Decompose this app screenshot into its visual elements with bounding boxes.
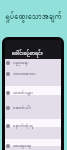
- staticText: ပညာရေး: [13, 59, 29, 66]
- staticText: ရှုပ်ထွေးသောအချက်များ: [0, 12, 67, 23]
- staticText: ဘာသာစကား: [13, 70, 36, 77]
- staticText: ဆောင်းပါး: [13, 104, 32, 111]
- button[interactable]: သတင်းများ: [5, 89, 61, 96]
- button[interactable]: ဘာသာစကား: [5, 70, 61, 77]
- button[interactable]: နောက်ဆုံးရ: [5, 122, 61, 129]
- button[interactable]: အထွေထွေ: [5, 142, 61, 149]
- staticText: ခေါင်းစဉ်စာရင်း: [12, 49, 43, 59]
- button[interactable]: ပညာရေး: [5, 59, 61, 66]
- button[interactable]: ဆောင်းပါး: [5, 104, 61, 111]
- staticText: နောက်ဆုံးရ: [13, 122, 33, 129]
- staticText: အထွေထွေ: [13, 142, 32, 149]
- button[interactable]: ခေါင်းစဉ်စာရင်း: [5, 49, 61, 59]
- staticText: သတင်းများ: [13, 89, 34, 96]
